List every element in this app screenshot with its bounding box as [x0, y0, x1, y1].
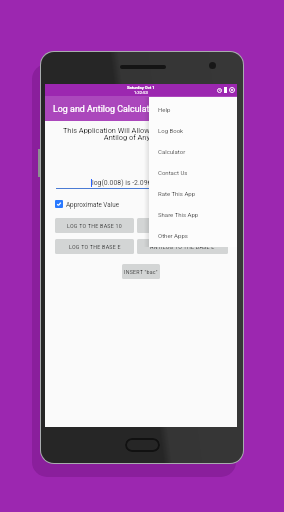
staticText: INSERT "bac": [124, 269, 158, 275]
staticText: Approximate Value: [66, 201, 119, 208]
button[interactable]: Other Apps: [149, 223, 237, 244]
staticText: log(0.008) is -2.0969100130080: [92, 179, 191, 187]
button[interactable]: Approximate Value: [55, 200, 119, 208]
button[interactable]: Log Book: [149, 118, 237, 139]
staticText: Saturday Oct 1: [127, 85, 155, 90]
button[interactable]: Contact Us: [149, 160, 237, 181]
staticText: This Application Will Allow You To Find …: [45, 126, 237, 142]
button[interactable]: Log and Antilog Calculator: [45, 96, 237, 121]
staticText: Calculator: [158, 148, 186, 155]
staticText: 1:32:53: [134, 90, 148, 95]
staticText: Help: [158, 106, 171, 113]
staticText: Rate This App: [158, 190, 196, 197]
other: Home: [125, 438, 160, 452]
staticText: LOG TO THE BASE 10: [67, 223, 123, 229]
button[interactable]: LOG TO THE BASE E: [55, 239, 134, 254]
staticText: LOG TO THE BASE E: [69, 244, 121, 250]
button[interactable]: INSERT "bac": [122, 264, 160, 279]
button[interactable]: Share This App: [149, 202, 237, 223]
button[interactable]: Calculator: [149, 139, 237, 160]
button[interactable]: Help: [149, 97, 237, 118]
button[interactable]: ANTILOG TO THE BASE 10: [137, 218, 228, 233]
staticText: Share This App: [158, 211, 199, 218]
staticText: Log Book: [158, 127, 184, 134]
staticText: Log and Antilog Calculator: [53, 104, 158, 114]
button[interactable]: Rate This App: [149, 181, 237, 202]
staticText: Other Apps: [158, 232, 188, 239]
staticText: ANTILOG TO THE BASE E: [150, 244, 215, 250]
button[interactable]: LOG TO THE BASE 10: [55, 218, 134, 233]
button[interactable]: ANTILOG TO THE BASE E: [137, 239, 228, 254]
staticText: Contact Us: [158, 169, 188, 176]
